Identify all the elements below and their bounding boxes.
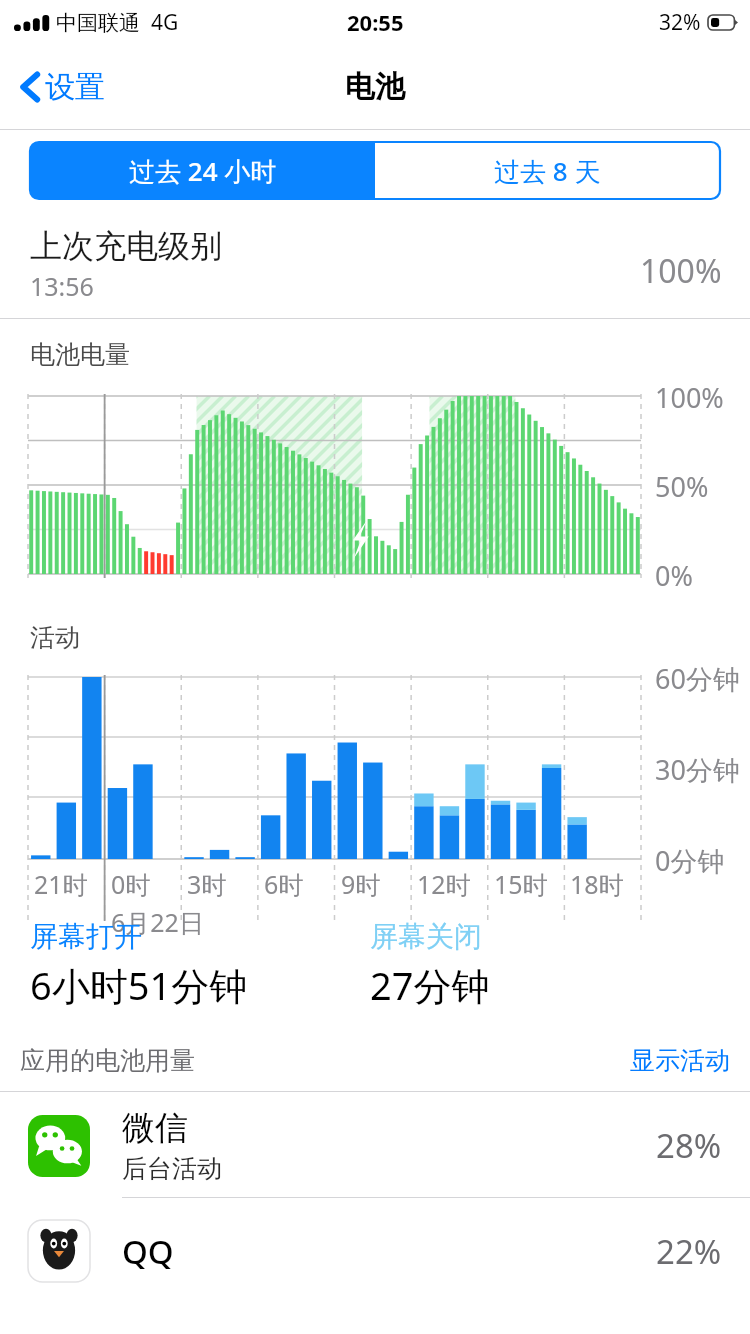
- staticText: 27分钟: [370, 959, 490, 1011]
- staticText: 60分钟: [655, 660, 740, 697]
- staticText: 100%: [640, 249, 722, 293]
- staticText: 上次充电级别: [30, 226, 222, 266]
- staticText: 应用的电池用量: [20, 1045, 195, 1076]
- button[interactable]: QQ: [0, 1198, 750, 1304]
- staticText: 100%: [655, 379, 724, 416]
- staticText: 22%: [656, 1229, 722, 1274]
- staticText: 50%: [655, 468, 709, 505]
- staticText: QQ: [122, 1229, 174, 1274]
- staticText: 电池: [345, 68, 405, 106]
- staticText: 28%: [656, 1123, 722, 1168]
- staticText: 屏幕关闭: [370, 919, 482, 954]
- staticText: 15时: [494, 867, 548, 901]
- staticText: 0时: [111, 867, 151, 901]
- staticText: 6小时51分钟: [30, 959, 248, 1011]
- button[interactable]: 显示活动: [610, 1037, 750, 1084]
- staticText: 过去 24 小时: [129, 153, 277, 189]
- staticText: 21时: [34, 867, 88, 901]
- staticText: 30分钟: [655, 751, 740, 788]
- staticText: 32%: [659, 8, 701, 37]
- staticText: 后台活动: [122, 1153, 222, 1184]
- staticText: 中国联通: [56, 10, 140, 36]
- staticText: 0%: [655, 557, 693, 594]
- staticText: 6时: [264, 867, 304, 901]
- button[interactable]: 过去 8 天: [375, 142, 720, 199]
- button[interactable]: 上次充电级别: [0, 211, 750, 318]
- staticText: 9时: [341, 867, 381, 901]
- button[interactable]: 过去 24 小时: [30, 142, 375, 199]
- staticText: 过去 8 天: [494, 153, 601, 189]
- staticText: 18时: [570, 867, 624, 901]
- staticText: 20:55: [347, 7, 404, 37]
- other: 返回设置: [20, 70, 40, 104]
- staticText: 4G: [151, 8, 179, 37]
- staticText: 显示活动: [630, 1045, 730, 1076]
- button[interactable]: 微信: [0, 1092, 750, 1198]
- staticText: 12时: [417, 867, 471, 901]
- staticText: 微信: [122, 1107, 188, 1149]
- button[interactable]: 返回设置: [16, 62, 109, 112]
- staticText: 0分钟: [655, 842, 725, 879]
- staticText: 设置: [45, 68, 105, 106]
- staticText: 电池电量: [30, 339, 130, 370]
- staticText: 13:56: [30, 269, 94, 303]
- staticText: 活动: [30, 622, 80, 653]
- staticText: 6月22日: [111, 905, 204, 939]
- staticText: 3时: [187, 867, 227, 901]
- staticText: 屏幕打开: [30, 919, 142, 954]
